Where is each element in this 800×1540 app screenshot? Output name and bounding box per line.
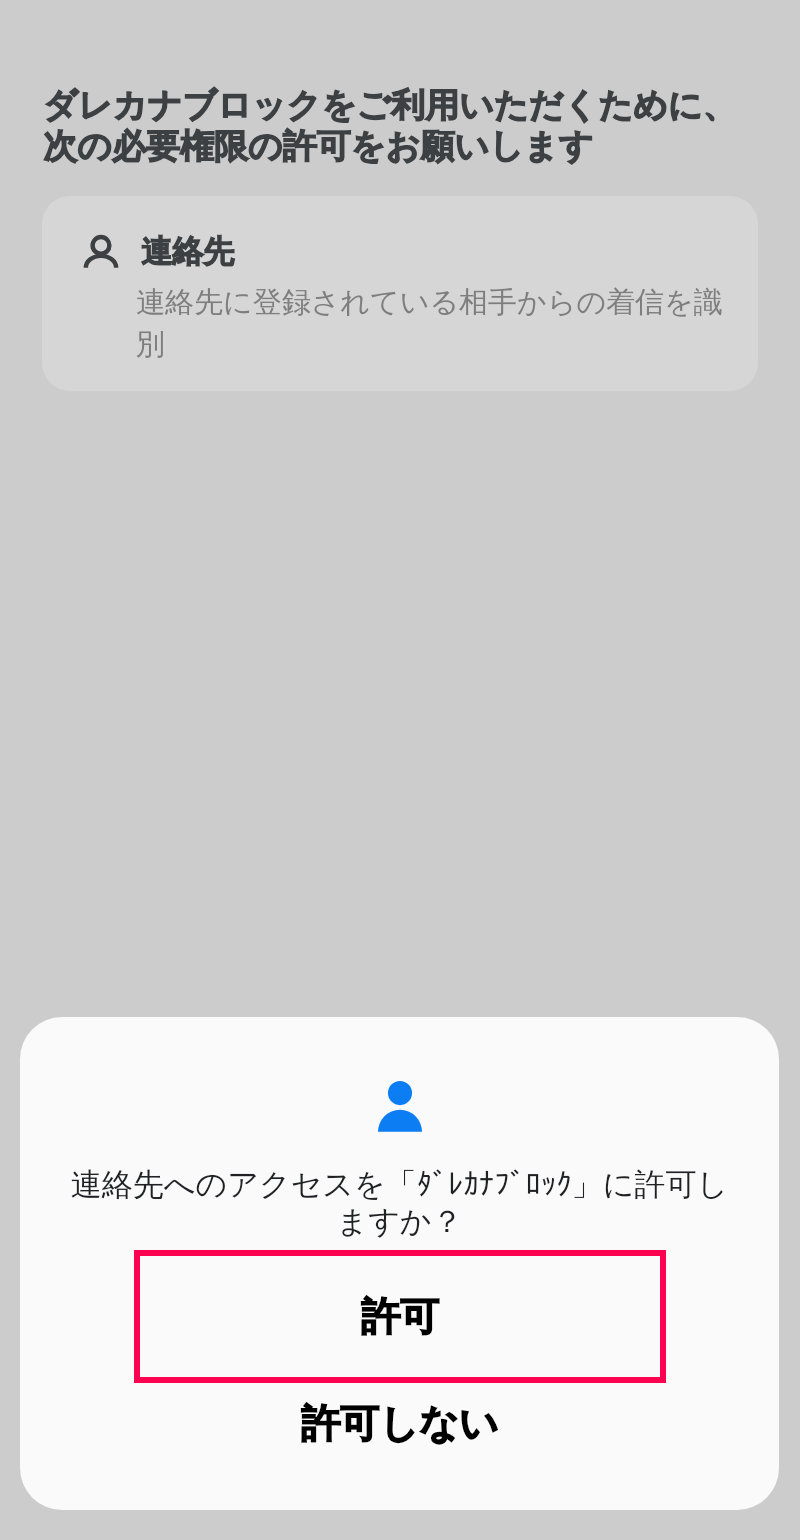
staticText: 許可しない	[301, 1399, 499, 1448]
staticText: 許可	[361, 1292, 439, 1341]
button[interactable]: Contacts	[42, 196, 758, 391]
staticText: ダレカナブロックをご利用いただくために、 次の必要権限の許可をお願いします	[43, 84, 737, 168]
staticText: 連絡先へのアクセスを「ﾀﾞﾚｶﾅﾌﾞﾛｯｸ」に許可しますか？	[70, 1165, 729, 1242]
other: Contacts permission	[374, 1081, 426, 1133]
staticText: 連絡先	[141, 232, 234, 271]
staticText: 連絡先に登録されている相手からの着信を識別	[136, 284, 736, 363]
button[interactable]: 許可しない	[20, 1383, 779, 1463]
other: Contacts	[83, 235, 119, 270]
button[interactable]: 許可	[134, 1250, 666, 1383]
